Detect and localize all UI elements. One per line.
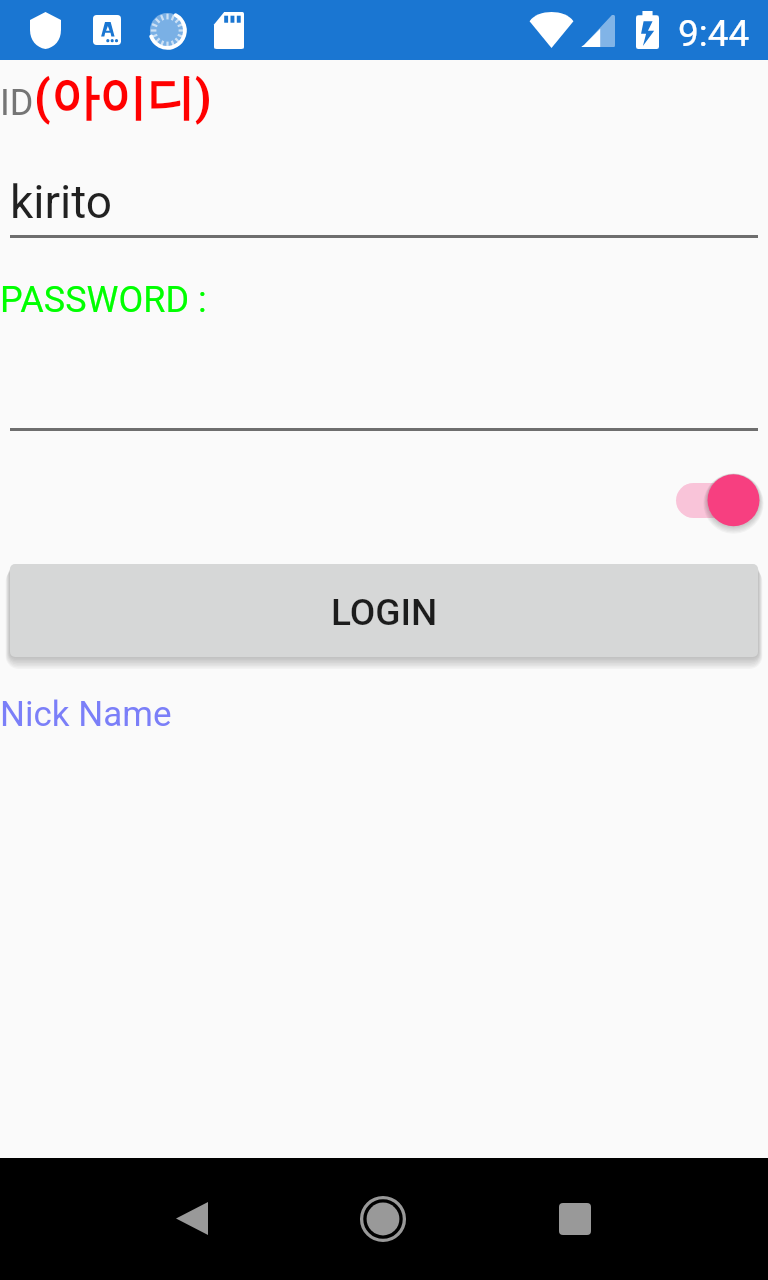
staticText: (아이디) <box>34 68 212 128</box>
button[interactable]: Password input field <box>10 353 758 431</box>
staticText: kirito <box>10 175 113 229</box>
button[interactable]: LOGIN <box>10 564 758 657</box>
button[interactable]: Back <box>157 1183 227 1253</box>
staticText: Nick Name <box>0 694 172 735</box>
staticText: 9:44 <box>678 12 750 55</box>
staticText: LOGIN <box>331 591 438 634</box>
button[interactable]: Recent apps <box>540 1184 610 1254</box>
button[interactable]: Home <box>348 1184 418 1254</box>
button[interactable]: Show password toggle <box>664 466 764 534</box>
staticText: ID <box>0 82 34 124</box>
button[interactable]: ID input field <box>10 160 758 238</box>
button[interactable]: Nick Name <box>0 690 180 736</box>
staticText: PASSWORD : <box>0 279 207 321</box>
